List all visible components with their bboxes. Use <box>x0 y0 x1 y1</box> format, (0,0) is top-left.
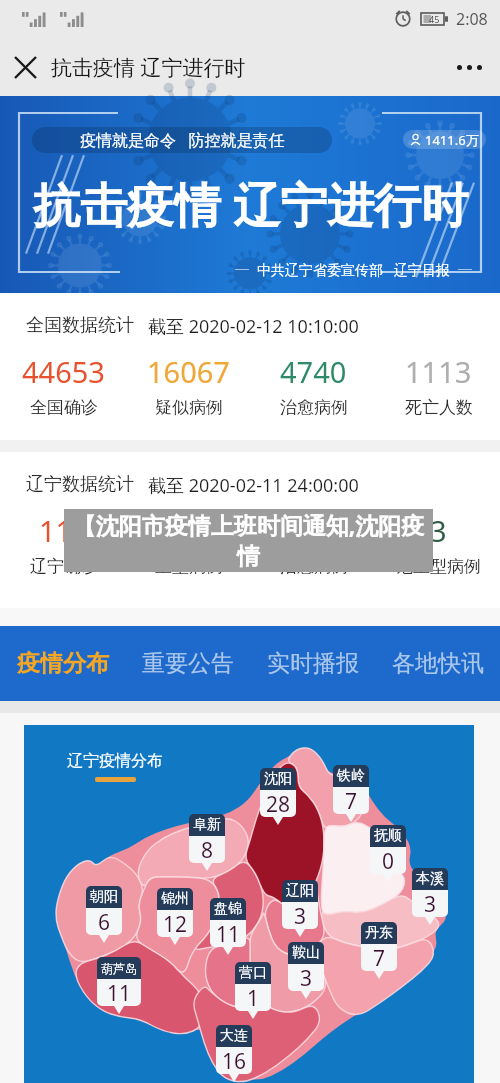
staticText: 铁岭 <box>337 767 365 785</box>
staticText: 16 <box>222 1047 247 1074</box>
staticText: 16067 <box>147 352 230 391</box>
staticText: 11 <box>216 920 241 947</box>
staticText: 实时播报 <box>267 649 359 678</box>
staticText: 截至 2020-02-12 10:10:00 <box>148 314 359 339</box>
staticText: 朝阳 <box>90 888 118 906</box>
staticText: 2:08 <box>456 8 488 30</box>
staticText: 1113 <box>405 352 472 391</box>
staticText: 危重型病例 <box>396 556 481 577</box>
staticText: 截至 2020-02-11 24:00:00 <box>148 473 359 498</box>
staticText: 抗击疫情 辽宁进行时 <box>51 53 246 82</box>
staticText: 8 <box>201 836 214 863</box>
staticText: 死亡人数 <box>405 397 473 418</box>
button[interactable]: More options <box>438 38 500 96</box>
staticText: 全国数据统计 <box>26 314 134 337</box>
staticText: 116 <box>39 511 89 550</box>
staticText: 【沈阳市疫情上班时间通知,沈阳疫情 管理询问电话】 <box>64 509 433 572</box>
staticText: 辽宁确诊 <box>30 556 98 577</box>
staticText: 11 <box>172 511 206 550</box>
staticText: 3 <box>300 964 313 991</box>
staticText: 11 <box>107 979 132 1006</box>
staticText: 治愈病例 <box>280 397 348 418</box>
button[interactable]: 重要公告 <box>125 626 250 701</box>
staticText: 10 <box>297 511 331 550</box>
staticText: 重要公告 <box>142 649 234 678</box>
staticText: 抗击疫情 辽宁进行时 <box>33 172 469 236</box>
staticText: 辽宁数据统计 <box>26 473 134 496</box>
staticText: 营口 <box>239 964 267 982</box>
staticText: 阜新 <box>193 816 221 834</box>
staticText: 中共辽宁省委宣传部 辽宁日报 <box>257 260 450 279</box>
staticText: 鞍山 <box>292 944 320 962</box>
staticText: 本溪 <box>416 870 444 888</box>
staticText: 44653 <box>22 352 105 391</box>
staticText: 3 <box>430 511 447 550</box>
staticText: 12 <box>163 910 188 937</box>
staticText: 7 <box>345 787 358 814</box>
staticText: 丹东 <box>365 924 393 942</box>
staticText: 各地快讯 <box>392 649 484 678</box>
staticText: 辽阳 <box>286 882 314 900</box>
staticText: 6 <box>98 908 111 935</box>
staticText: 疫情分布 <box>17 649 109 678</box>
staticText: 45 <box>429 13 440 25</box>
staticText: 重型病例 <box>155 556 223 577</box>
staticText: 大连 <box>220 1027 248 1045</box>
staticText: 葫芦岛 <box>101 961 137 976</box>
staticText: 锦州 <box>161 890 189 908</box>
staticText: 抚顺 <box>374 827 402 845</box>
staticText: 盘锦 <box>214 900 242 918</box>
staticText: 7 <box>373 944 386 971</box>
staticText: 28 <box>266 790 291 817</box>
staticText: 沈阳 <box>264 770 292 788</box>
button[interactable]: Close <box>0 42 51 93</box>
staticText: 1411.6万 <box>425 131 479 149</box>
staticText: 1 <box>247 984 260 1011</box>
staticText: 治愈病例 <box>280 556 348 577</box>
staticText: 疑似病例 <box>155 397 223 418</box>
button[interactable]: 疫情分布 <box>0 626 125 701</box>
staticText: 4740 <box>280 352 347 391</box>
staticText: 疫情就是命令 防控就是责任 <box>80 129 285 151</box>
staticText: 全国确诊 <box>30 397 98 418</box>
staticText: 辽宁疫情分布 <box>67 751 163 771</box>
staticText: 3 <box>294 902 307 929</box>
button[interactable]: 各地快讯 <box>375 626 500 701</box>
staticText: 3 <box>424 890 437 917</box>
staticText: 0 <box>382 847 395 874</box>
button[interactable]: 实时播报 <box>250 626 375 701</box>
